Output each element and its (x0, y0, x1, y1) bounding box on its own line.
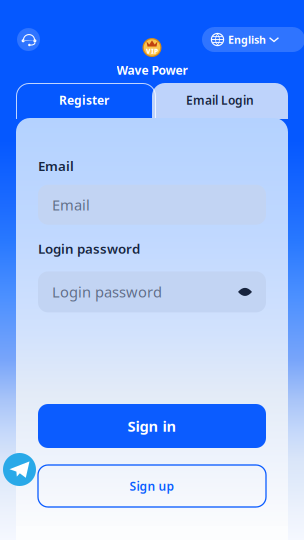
staticText: Login password (52, 282, 162, 302)
staticText: Sign up (129, 478, 174, 494)
button[interactable]: Register (16, 83, 152, 117)
button[interactable]: Telegram (3, 453, 36, 486)
staticText: VIP (146, 47, 158, 56)
staticText: English (228, 32, 266, 47)
staticText: Sign in (127, 416, 176, 436)
staticText: Login password (38, 240, 140, 257)
button[interactable]: Sign up (38, 465, 266, 507)
button[interactable]: Email Login (152, 83, 288, 117)
staticText: Email (52, 195, 90, 214)
button[interactable]: Show password (238, 286, 252, 297)
staticText: Wave Power (116, 62, 187, 78)
staticText: Register (59, 92, 109, 108)
button[interactable]: Sign in (38, 404, 266, 448)
button[interactable]: Language: English (202, 27, 304, 52)
staticText: Email (38, 157, 74, 175)
button[interactable]: Customer service (17, 28, 40, 51)
staticText: Email Login (186, 92, 254, 108)
